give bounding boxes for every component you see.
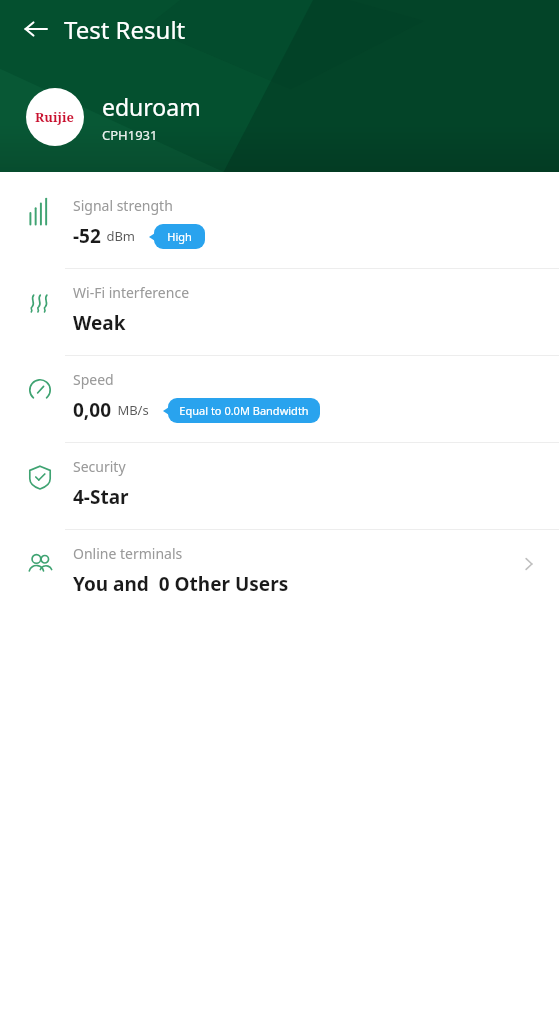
- staticText: dBm: [103, 227, 135, 245]
- staticText: 4-Star: [73, 484, 129, 510]
- staticText: You and 0 Other Users: [73, 571, 289, 597]
- staticText: 0,00: [73, 397, 112, 423]
- staticText: Online terminals: [73, 544, 183, 563]
- button[interactable]: Online terminals: [0, 530, 559, 616]
- button[interactable]: Security: [0, 443, 559, 529]
- staticText: High: [167, 229, 192, 244]
- staticText: Weak: [73, 310, 126, 336]
- staticText: eduroam: [102, 91, 201, 122]
- staticText: -52: [73, 223, 101, 249]
- staticText: Signal strength: [73, 196, 173, 215]
- staticText: Test Result: [64, 13, 186, 46]
- button[interactable]: Signal strength: [0, 182, 559, 268]
- button[interactable]: Speed: [0, 356, 559, 442]
- staticText: Equal to 0.0M Bandwidth: [179, 403, 309, 418]
- button[interactable]: Wi-Fi interference: [0, 269, 559, 355]
- staticText: MB/s: [114, 401, 149, 419]
- staticText: Speed: [73, 370, 114, 389]
- staticText: CPH1931: [102, 126, 158, 144]
- staticText: Security: [73, 457, 126, 476]
- staticText: Ruijie: [35, 108, 75, 126]
- button[interactable]: Back: [14, 7, 58, 51]
- staticText: Wi-Fi interference: [73, 283, 190, 302]
